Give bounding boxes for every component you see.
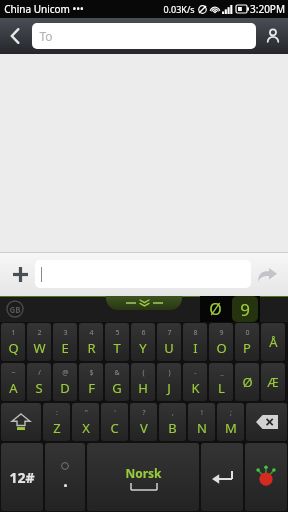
staticText: ( [142, 368, 145, 378]
staticText: GB [9, 304, 21, 315]
button[interactable]: Å [261, 323, 285, 361]
button[interactable]: Æ [261, 363, 285, 401]
staticText: 2 [37, 328, 42, 338]
button[interactable]: & [105, 363, 129, 401]
staticText: 5 [115, 328, 120, 338]
staticText: U [164, 339, 174, 357]
staticText: S [35, 379, 43, 397]
button[interactable]: ' [101, 403, 128, 441]
staticText: Ø [242, 373, 253, 391]
staticText: N [197, 419, 207, 437]
staticText: Q [8, 339, 19, 357]
staticText: 3:20PM [250, 2, 285, 16]
button[interactable] [201, 443, 243, 511]
staticText: D [60, 379, 70, 397]
staticText: ; [230, 408, 232, 418]
staticText: To [39, 28, 53, 44]
staticText: 9 [219, 328, 224, 338]
staticText: 4 [89, 328, 94, 338]
button[interactable]: 6 [131, 323, 155, 361]
staticText: $ [89, 368, 94, 378]
button[interactable]: ( [131, 363, 155, 401]
button[interactable]: Back [0, 18, 30, 54]
button[interactable]: _ [209, 363, 233, 401]
staticText: ! [201, 408, 203, 418]
staticText: 7 [167, 328, 172, 338]
button[interactable] [1, 403, 41, 441]
staticText: T [113, 339, 121, 357]
staticText: Y [139, 339, 147, 357]
staticText: M [225, 419, 237, 437]
staticText: Z [53, 419, 61, 437]
button[interactable] [245, 443, 287, 511]
button[interactable]: 0 [235, 323, 259, 361]
button[interactable]: Hide keyboard [106, 296, 182, 310]
staticText: I [193, 339, 198, 357]
button[interactable]: 4 [79, 323, 103, 361]
staticText: B [168, 419, 177, 437]
button[interactable]: 2 [27, 323, 51, 361]
button[interactable]: " [72, 403, 99, 441]
button[interactable]: , [159, 403, 186, 441]
staticText: 1 [11, 328, 16, 338]
button[interactable]: 1 [1, 323, 25, 361]
button[interactable]: ) [157, 363, 181, 401]
staticText: 9 [240, 298, 250, 321]
staticText: X [82, 419, 90, 437]
button[interactable]: Norsk [87, 443, 199, 511]
staticText: V [140, 419, 148, 437]
button[interactable]: 12# [1, 443, 43, 511]
button[interactable]: 7 [157, 323, 181, 361]
button[interactable]: Add attachment [5, 259, 35, 289]
staticText: ~ [11, 368, 16, 378]
staticText: W [33, 339, 46, 357]
staticText: L [218, 379, 225, 397]
button[interactable]: Send [251, 258, 283, 290]
staticText: Norsk [125, 465, 162, 481]
button[interactable]: ! [188, 403, 215, 441]
staticText: & [114, 368, 120, 378]
staticText: K [191, 379, 200, 397]
button[interactable]: . [45, 443, 85, 511]
staticText: J [167, 379, 171, 397]
button[interactable] [35, 260, 251, 288]
staticText: - [194, 368, 197, 378]
button[interactable]: 8 [183, 323, 207, 361]
staticText: ) [168, 368, 171, 378]
staticText: H [138, 379, 148, 397]
button[interactable]: Language GB [6, 300, 24, 318]
staticText: 0.03K/s [163, 3, 195, 15]
button[interactable]: ~ [1, 363, 25, 401]
button[interactable]: ; [217, 403, 244, 441]
staticText: . [63, 470, 68, 492]
staticText: _ [220, 368, 224, 378]
button[interactable]: 5 [105, 323, 129, 361]
staticText: ? [142, 408, 146, 418]
button[interactable] [246, 403, 287, 441]
button[interactable]: : [43, 403, 70, 441]
staticText: 8 [193, 328, 198, 338]
button[interactable]: @ [53, 363, 77, 401]
button[interactable]: To [32, 23, 256, 49]
button[interactable]: 9 [209, 323, 233, 361]
staticText: A [9, 379, 18, 397]
staticText: R [87, 339, 96, 357]
button[interactable]: / [27, 363, 51, 401]
staticText: Ø [209, 298, 222, 320]
button[interactable]: 3 [53, 323, 77, 361]
staticText: C [110, 419, 119, 437]
button[interactable]: Contacts [258, 18, 288, 54]
staticText: 12# [9, 468, 35, 487]
staticText: E [61, 339, 69, 357]
staticText: 3 [63, 328, 68, 338]
staticText: P [243, 339, 251, 357]
button[interactable]: Ø [235, 363, 259, 401]
staticText: / [38, 368, 41, 378]
button[interactable]: - [183, 363, 207, 401]
button[interactable]: $ [79, 363, 103, 401]
staticText: @ [62, 368, 69, 378]
staticText: F [88, 379, 95, 397]
button[interactable]: ? [130, 403, 157, 441]
staticText: : [56, 408, 58, 418]
staticText: G [112, 379, 122, 397]
